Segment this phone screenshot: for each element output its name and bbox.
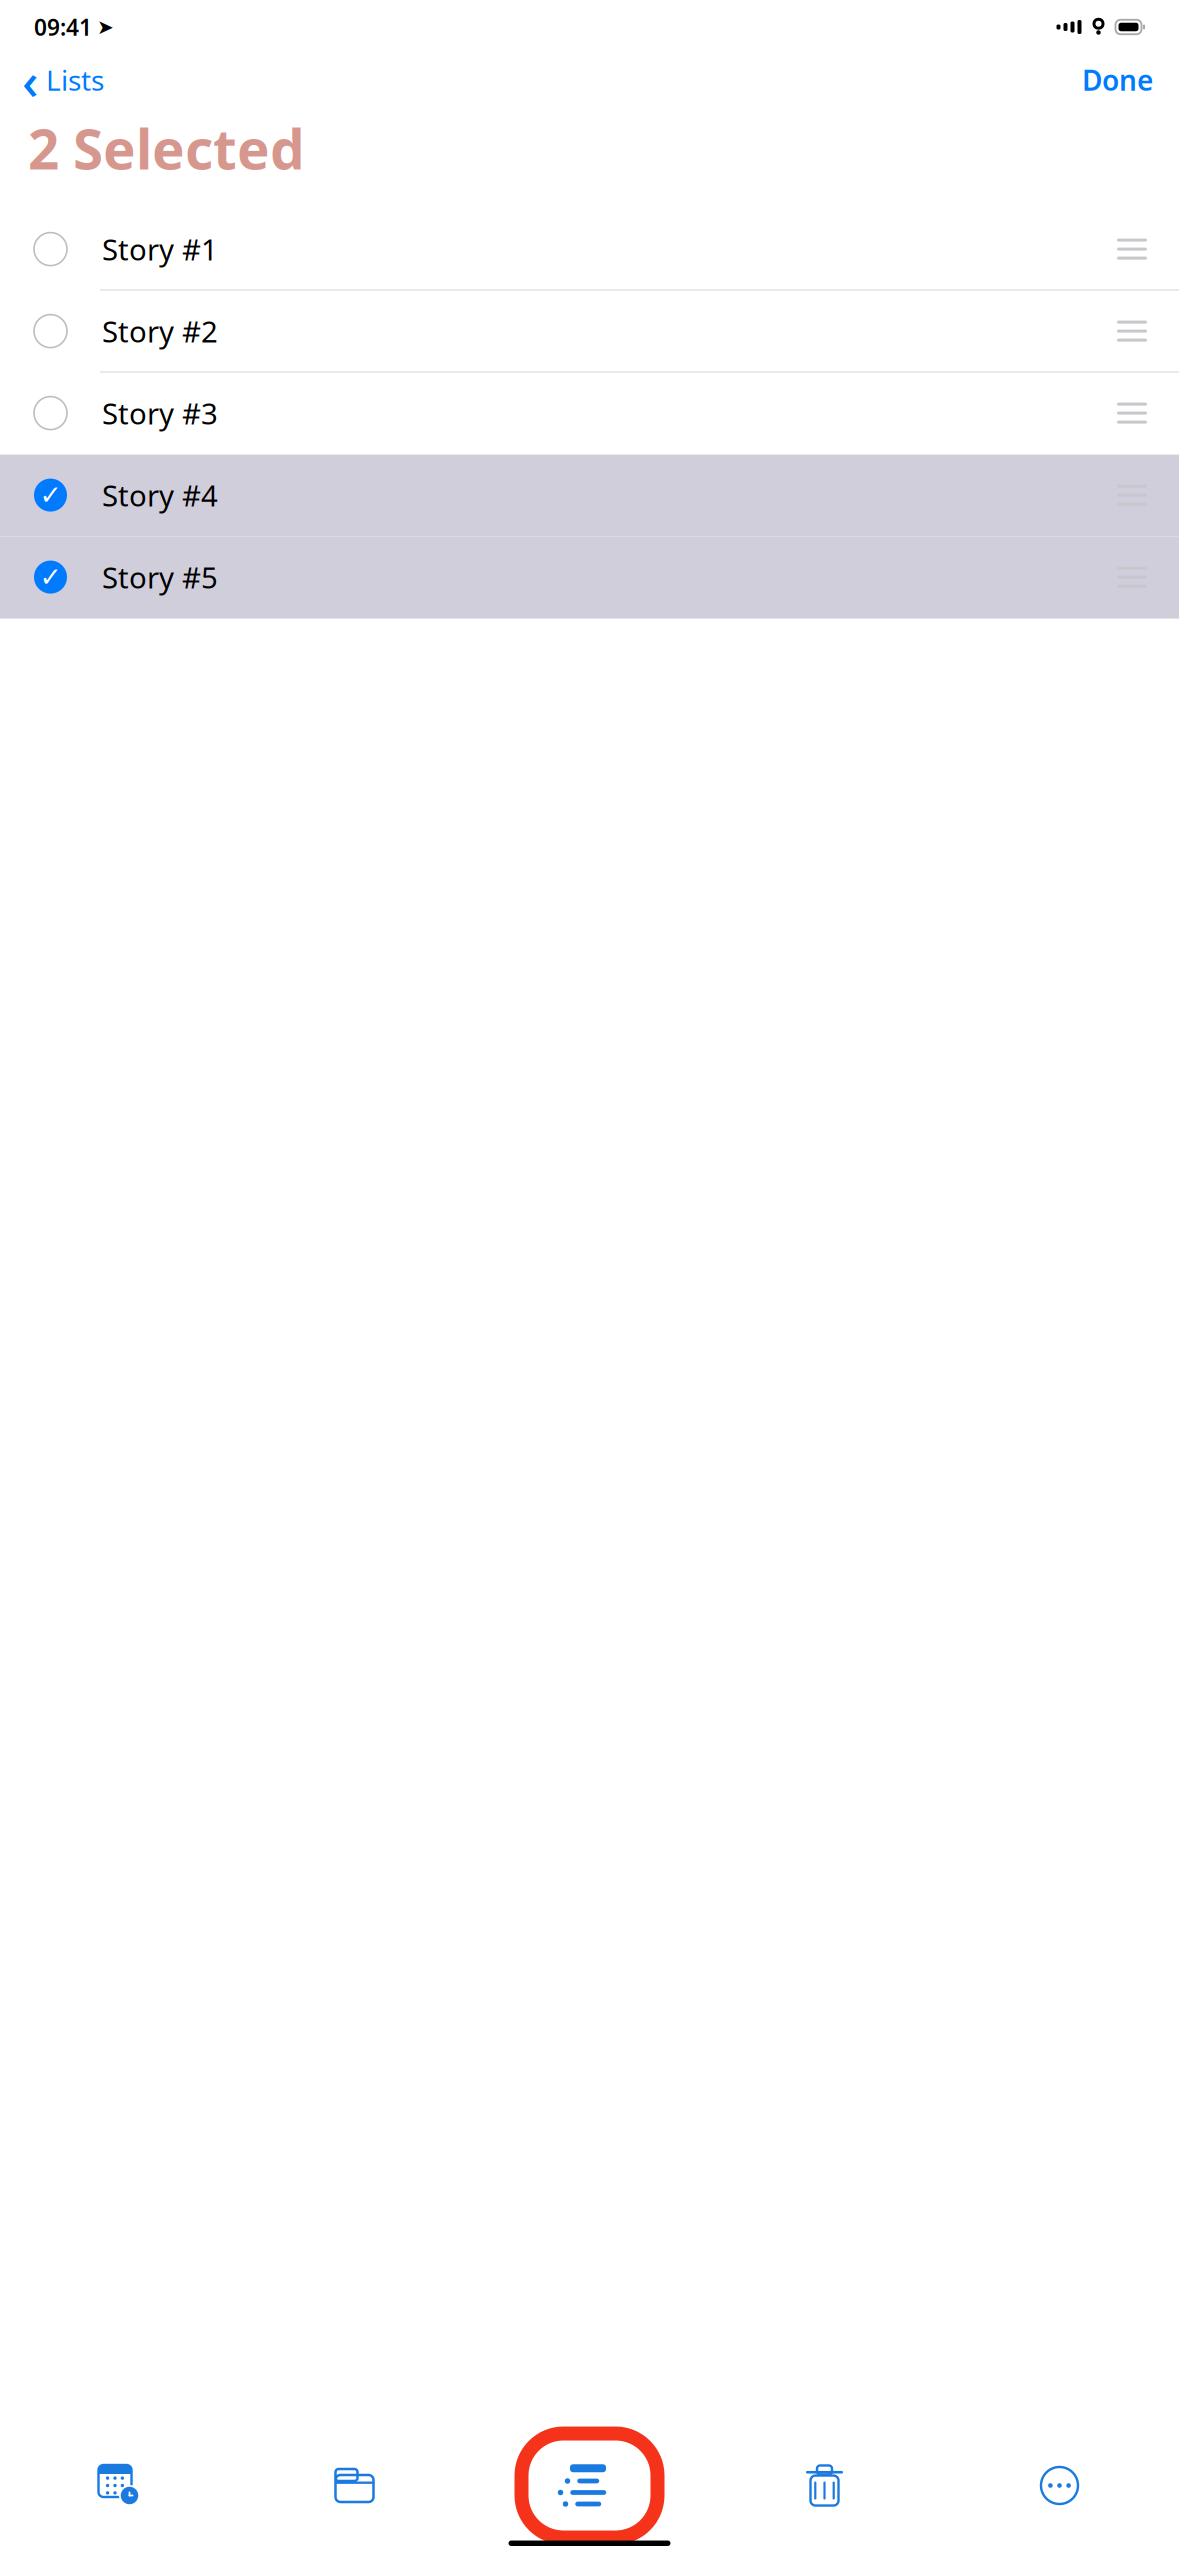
staticText: ✓ — [39, 562, 61, 592]
staticText: Story #2 — [102, 312, 218, 351]
button[interactable]: Show list options — [472, 2433, 707, 2537]
staticText: Done — [1082, 61, 1153, 99]
button[interactable]: More — [942, 2433, 1177, 2537]
staticText: Lists — [46, 61, 104, 99]
staticText: ✓ — [39, 480, 61, 510]
button[interactable]: Move to folder — [237, 2433, 472, 2537]
staticText: ‹ — [22, 46, 39, 114]
staticText: Story #4 — [102, 476, 218, 515]
button[interactable]: Story #3 — [0, 373, 1179, 455]
staticText: Story #5 — [102, 558, 218, 597]
staticText: 2 Selected — [28, 112, 305, 185]
button[interactable]: Done — [1062, 55, 1173, 105]
staticText: Story #1 — [102, 230, 218, 269]
button[interactable]: Schedule — [2, 2433, 237, 2537]
button[interactable]: ✓ — [0, 455, 1179, 537]
button[interactable]: Story #1 — [0, 209, 1179, 291]
button[interactable]: Delete — [707, 2433, 942, 2537]
button[interactable]: ✓ — [0, 537, 1179, 619]
staticText: ➤ — [97, 16, 114, 38]
staticText: Story #3 — [102, 394, 218, 433]
staticText: 09:41 — [34, 12, 92, 42]
button[interactable]: Story #2 — [0, 291, 1179, 373]
button[interactable]: ‹ — [6, 55, 116, 105]
